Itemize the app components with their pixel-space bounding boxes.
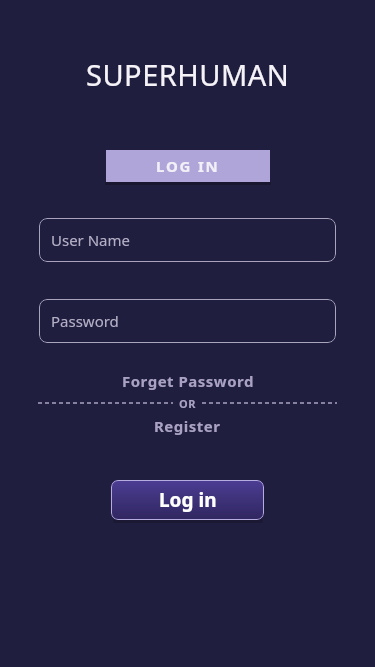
staticText: LOG IN	[156, 156, 220, 176]
staticText: Forget Password	[122, 371, 254, 391]
staticText: OR	[179, 396, 196, 410]
staticText: SUPERHUMAN	[86, 55, 290, 89]
staticText: Log in	[159, 487, 217, 513]
button[interactable]: Password	[39, 299, 336, 343]
button[interactable]: User Name	[39, 218, 336, 262]
staticText: Register	[154, 416, 221, 436]
staticText: User Name	[51, 230, 131, 250]
staticText: Password	[51, 311, 119, 331]
button[interactable]: Register	[154, 416, 221, 436]
button[interactable]: LOG IN	[106, 150, 270, 182]
button[interactable]: Log in	[111, 480, 264, 520]
button[interactable]: Forget Password	[122, 371, 254, 391]
